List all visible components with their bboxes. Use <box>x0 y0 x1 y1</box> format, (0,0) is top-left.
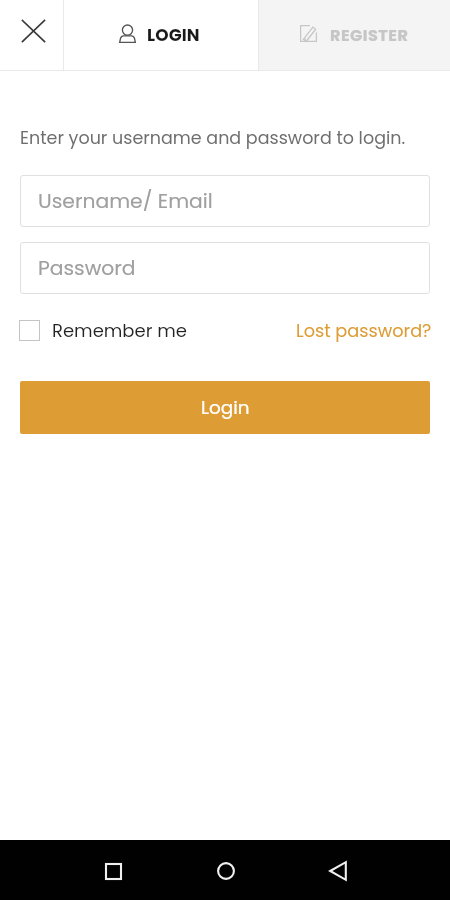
staticText: Login <box>201 395 250 421</box>
button[interactable]: Password <box>20 242 430 294</box>
button[interactable]: Username/ Email <box>20 175 430 227</box>
staticText: REGISTER <box>330 24 409 46</box>
button[interactable]: Back <box>282 840 394 900</box>
staticText: Remember me <box>52 318 187 343</box>
button[interactable]: REGISTER <box>259 0 450 70</box>
button[interactable]: Login <box>20 381 430 434</box>
button[interactable]: LOGIN <box>64 0 258 70</box>
button[interactable]: Lost password? <box>296 318 432 343</box>
button[interactable]: Close <box>0 0 63 70</box>
staticText: Lost password? <box>296 318 432 343</box>
staticText: LOGIN <box>147 23 200 47</box>
button[interactable]: Home <box>170 840 282 900</box>
staticText: Password <box>38 254 136 282</box>
button[interactable]: Remember me <box>19 318 187 343</box>
staticText: Username/ Email <box>38 187 213 215</box>
button[interactable]: Recent apps <box>57 840 169 900</box>
staticText: Enter your username and password to logi… <box>20 126 406 151</box>
